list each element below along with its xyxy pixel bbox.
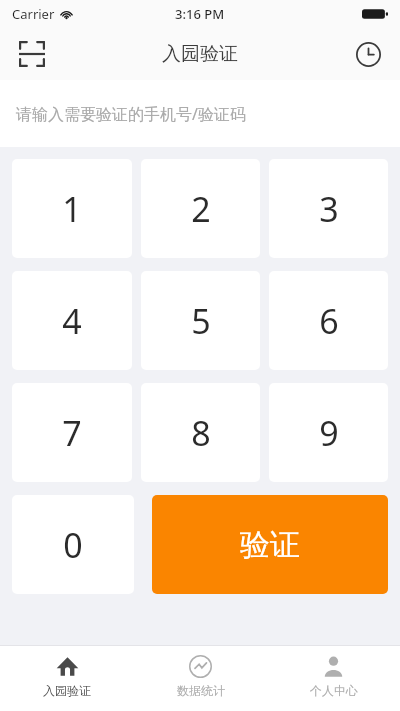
button[interactable]: 2 <box>141 159 260 258</box>
staticText: 请输入需要验证的手机号/验证码 <box>16 103 246 125</box>
staticText: 7 <box>62 410 82 456</box>
staticText: 3 <box>319 186 339 232</box>
staticText: 3:16 PM <box>175 5 225 23</box>
staticText: 4 <box>62 298 82 344</box>
button[interactable]: 7 <box>12 383 132 482</box>
staticText: Carrier <box>12 5 55 23</box>
button[interactable]: 个人中心 <box>267 646 400 711</box>
staticText: 0 <box>63 522 83 568</box>
staticText: 入园验证 <box>43 683 91 698</box>
button[interactable]: Scan QR code <box>10 32 54 76</box>
button[interactable]: 0 <box>12 495 134 594</box>
staticText: 6 <box>319 298 339 344</box>
button[interactable]: 请输入需要验证的手机号/验证码 <box>0 80 400 147</box>
staticText: 2 <box>191 186 211 232</box>
staticText: 验证 <box>240 526 300 564</box>
button[interactable]: 6 <box>269 271 388 370</box>
staticText: 个人中心 <box>310 683 358 698</box>
button[interactable]: 9 <box>269 383 388 482</box>
button[interactable]: 4 <box>12 271 132 370</box>
button[interactable]: 3 <box>269 159 388 258</box>
button[interactable]: History <box>346 32 390 76</box>
staticText: 8 <box>191 410 211 456</box>
staticText: 1 <box>62 186 82 232</box>
staticText: 数据统计 <box>177 683 225 698</box>
button[interactable]: 1 <box>12 159 132 258</box>
button[interactable]: 5 <box>141 271 260 370</box>
button[interactable]: 验证 <box>152 495 388 594</box>
button[interactable]: 8 <box>141 383 260 482</box>
staticText: 5 <box>191 298 211 344</box>
button[interactable]: 入园验证 <box>0 646 134 711</box>
staticText: 9 <box>319 410 339 456</box>
button[interactable]: 数据统计 <box>134 646 267 711</box>
staticText: 入园验证 <box>162 42 238 66</box>
